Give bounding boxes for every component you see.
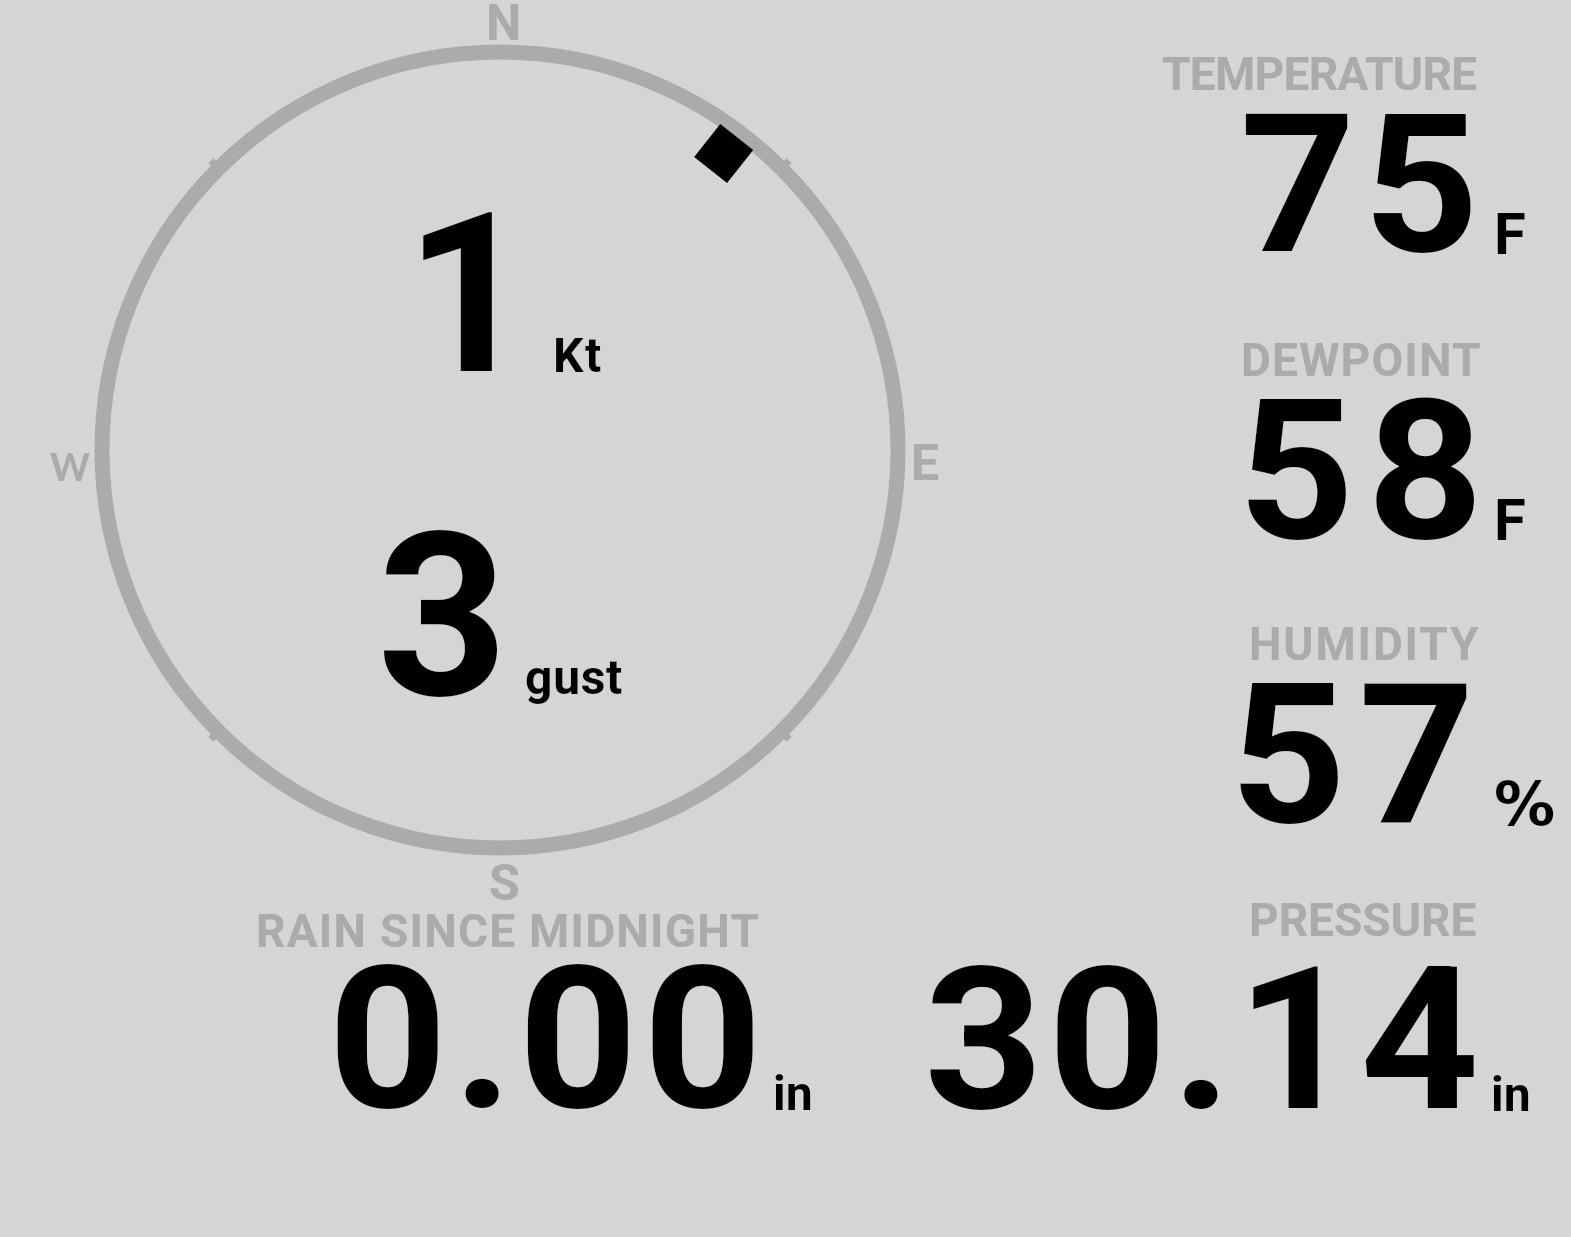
staticText: %: [1494, 768, 1556, 839]
staticText: E: [911, 434, 940, 493]
staticText: DEWPOINT: [1241, 333, 1482, 387]
staticText: Kt: [553, 327, 603, 383]
button[interactable]: Wind direction compass, 1 knot, gusting …: [80, 30, 920, 870]
staticText: PRESSURE: [1249, 893, 1477, 947]
staticText: HUMIDITY: [1249, 617, 1481, 671]
staticText: RAIN SINCE MIDNIGHT: [256, 904, 761, 958]
staticText: 30.14: [924, 923, 1484, 1156]
button[interactable]: Rain since midnight 0.00 inches: [255, 905, 820, 1115]
staticText: 1: [405, 165, 533, 425]
staticText: F: [1494, 200, 1526, 268]
staticText: S: [489, 854, 520, 913]
staticText: in: [1491, 1066, 1531, 1122]
staticText: F: [1494, 486, 1526, 554]
staticText: N: [486, 0, 522, 53]
staticText: W: [50, 443, 90, 489]
button[interactable]: Pressure 30.14 inches: [925, 895, 1535, 1115]
staticText: 0.00: [328, 922, 768, 1155]
button[interactable]: Temperature 75 degrees Fahrenheit: [1150, 48, 1550, 263]
staticText: in: [773, 1065, 813, 1121]
button[interactable]: Humidity 57 percent: [1150, 618, 1560, 833]
staticText: TEMPERATURE: [1162, 47, 1477, 101]
button[interactable]: Dewpoint 58 degrees Fahrenheit: [1150, 334, 1550, 549]
staticText: 57: [1230, 642, 1487, 869]
staticText: gust: [525, 649, 624, 705]
staticText: 58: [1238, 358, 1496, 585]
staticText: 3: [377, 483, 508, 750]
staticText: 75: [1240, 72, 1487, 298]
